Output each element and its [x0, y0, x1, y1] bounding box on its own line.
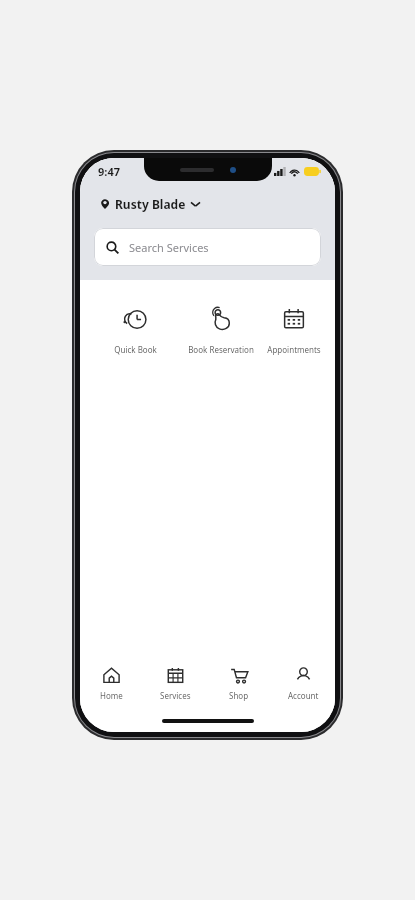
staticText: Rusty Blade [115, 196, 186, 212]
button[interactable]: Shop [207, 658, 271, 710]
button[interactable]: Services [143, 658, 207, 710]
button[interactable]: Quick Book [92, 302, 178, 359]
staticText: Services [160, 690, 191, 701]
button[interactable]: Account [271, 658, 335, 710]
staticText: Search Services [129, 240, 209, 255]
staticText: 9:47 [98, 164, 120, 179]
staticText: Quick Book [114, 344, 157, 355]
button[interactable]: Home [80, 658, 143, 710]
staticText: Appointments [267, 344, 321, 355]
button[interactable]: Appointments [264, 302, 323, 359]
button[interactable]: Rusty Blade [98, 194, 202, 214]
staticText: Shop [229, 690, 249, 701]
staticText: Book Reservation [188, 344, 254, 355]
staticText: Account [288, 690, 319, 701]
button[interactable]: Book Reservation [178, 302, 264, 359]
button[interactable]: Search Services [94, 228, 321, 266]
staticText: Home [100, 690, 123, 701]
